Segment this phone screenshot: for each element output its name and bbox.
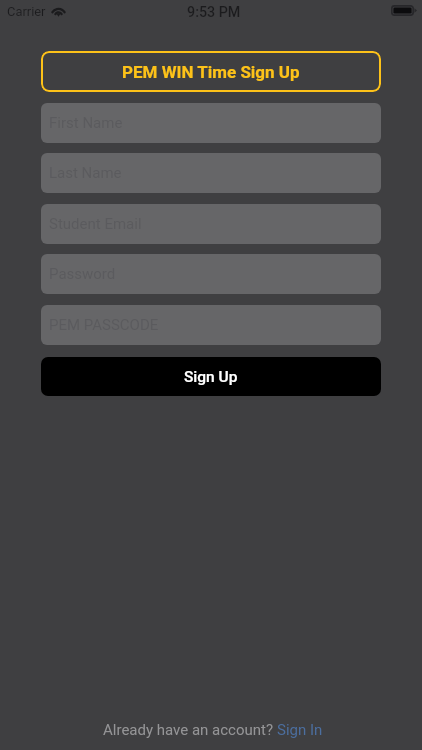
button[interactable]: PEM WIN Time Sign Up (41, 51, 381, 92)
button[interactable]: Sign Up (41, 357, 381, 396)
staticText: Sign Up (184, 368, 238, 386)
staticText: 9:53 PM (187, 4, 241, 21)
staticText: Password (49, 265, 116, 283)
staticText: PEM WIN Time Sign Up (122, 62, 300, 82)
staticText: Already have an account? (103, 721, 277, 739)
other: Wifi (50, 5, 67, 16)
staticText: PEM PASSCODE (49, 316, 159, 334)
staticText: First Name (49, 114, 123, 132)
staticText: Last Name (49, 164, 122, 182)
staticText: Student Email (49, 215, 142, 233)
button[interactable]: Sign In (277, 721, 323, 739)
other: Battery (391, 5, 417, 16)
staticText: Carrier (7, 4, 46, 19)
staticText: Sign In (277, 721, 323, 739)
